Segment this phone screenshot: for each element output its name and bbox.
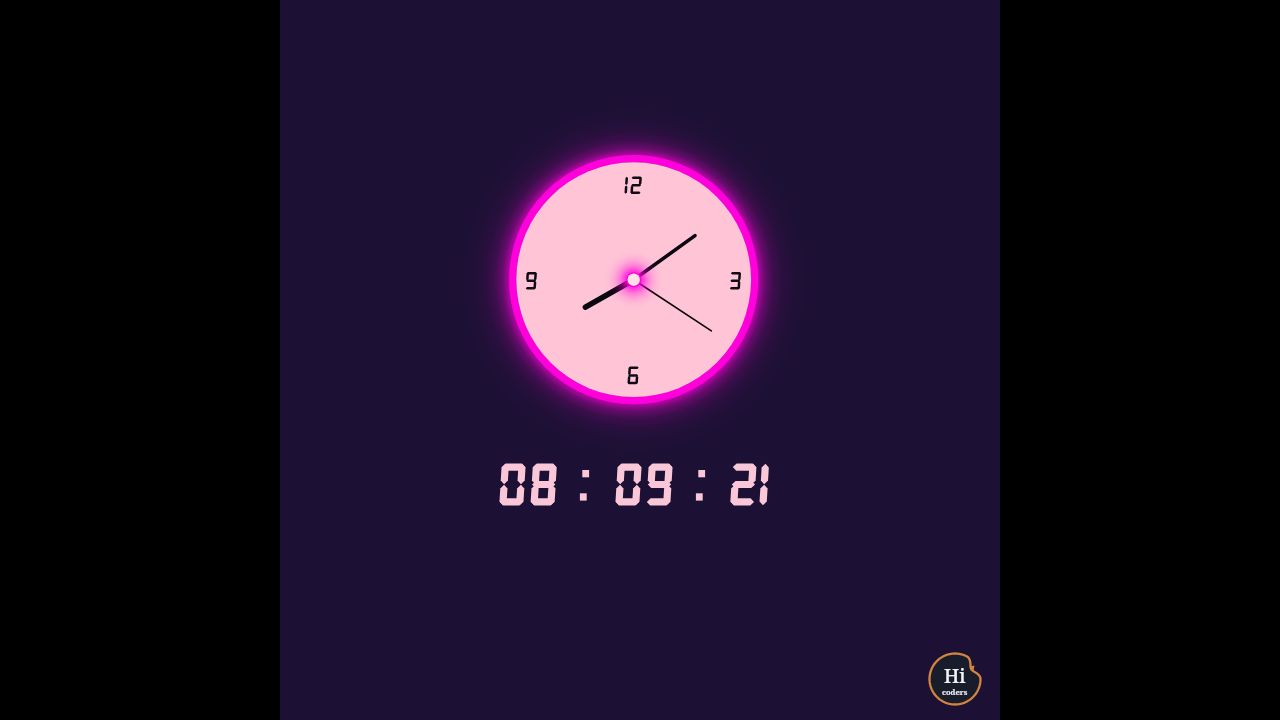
staticText: coders (942, 687, 968, 697)
button[interactable]: Analog clock, 8:09:21 (512, 158, 755, 401)
button[interactable]: Digital time 08:09:21 (494, 456, 786, 514)
staticText: Hi (944, 663, 966, 689)
button[interactable]: Hi coders logo (929, 653, 981, 705)
